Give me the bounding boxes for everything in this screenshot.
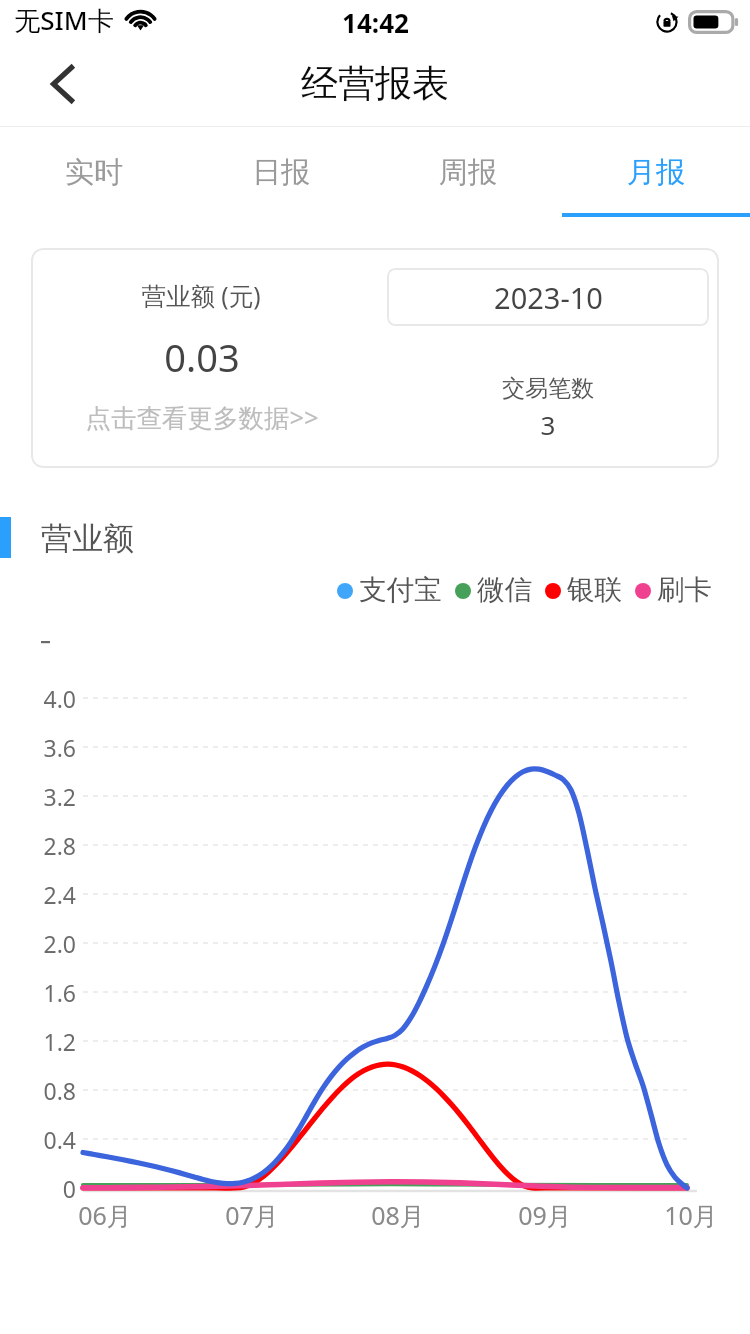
staticText: 10月 [641, 1198, 741, 1232]
staticText: 0.03 [72, 331, 332, 383]
staticText: 日报 [252, 154, 310, 191]
staticText: 无SIM卡 [14, 2, 114, 38]
button[interactable]: 微信 [455, 573, 532, 608]
staticText: 1.2 [20, 1026, 76, 1057]
staticText: 0.4 [20, 1124, 76, 1155]
staticText: 实时 [65, 154, 123, 191]
button[interactable]: 周报 [374, 127, 562, 217]
staticText: 0 [20, 1173, 76, 1204]
staticText: 06月 [55, 1198, 155, 1232]
staticText: 1.6 [20, 977, 76, 1008]
staticText: 微信 [477, 573, 532, 608]
staticText: 3.2 [20, 781, 76, 812]
button[interactable]: 日报 [187, 127, 374, 217]
button[interactable]: 银联 [545, 573, 622, 608]
staticText: 2023-10 [494, 278, 603, 317]
button[interactable]: 2023-10 [387, 268, 709, 326]
button[interactable]: 点击查看更多数据>> [42, 398, 362, 436]
button[interactable]: 刷卡 [635, 573, 712, 608]
staticText: 刷卡 [657, 573, 712, 608]
staticText: 2.8 [20, 830, 76, 861]
staticText: 支付宝 [359, 573, 442, 608]
staticText: 交易笔数 [448, 374, 648, 403]
staticText: 银联 [567, 573, 622, 608]
staticText: 0.8 [20, 1075, 76, 1106]
staticText: 营业额 [41, 519, 134, 558]
staticText: 经营报表 [301, 60, 449, 107]
staticText: 月报 [627, 154, 685, 191]
button[interactable]: 实时 [0, 127, 187, 217]
staticText: 2.4 [20, 879, 76, 910]
staticText: 点击查看更多数据>> [42, 400, 362, 435]
staticText: 周报 [439, 154, 497, 191]
staticText: 14:42 [342, 5, 409, 40]
staticText: 2.0 [20, 928, 76, 959]
staticText: 08月 [348, 1198, 448, 1232]
staticText: 3.6 [20, 732, 76, 763]
button[interactable]: 月报 [562, 127, 750, 217]
staticText: 4.0 [20, 683, 76, 714]
button[interactable]: 支付宝 [337, 573, 442, 608]
staticText: 3 [448, 407, 648, 442]
staticText: 09月 [495, 1198, 595, 1232]
button[interactable]: Back [28, 59, 96, 109]
staticText: 07月 [202, 1198, 302, 1232]
staticText: 营业额 (元) [71, 279, 331, 312]
